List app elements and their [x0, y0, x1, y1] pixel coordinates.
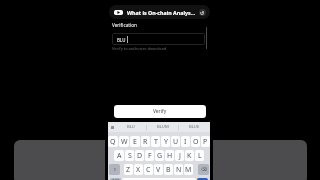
- button[interactable]: R: [141, 136, 150, 147]
- staticText: A: [117, 151, 122, 161]
- staticText: P: [203, 137, 208, 147]
- button[interactable]: BLU: [116, 122, 146, 132]
- staticText: Verify to authorize download: [112, 46, 167, 51]
- staticText: O: [193, 137, 199, 147]
- staticText: 123: [112, 178, 120, 180]
- button[interactable]: V: [154, 164, 163, 175]
- staticText: Y: [164, 137, 168, 147]
- staticText: E: [133, 137, 137, 147]
- staticText: J: [179, 151, 181, 161]
- button[interactable]: Refresh: [199, 9, 206, 16]
- staticText: M: [185, 165, 192, 175]
- button[interactable]: Numbers: [110, 178, 121, 180]
- staticText: What is On-chain Analys...: [127, 9, 196, 16]
- button[interactable]: W: [119, 136, 129, 147]
- staticText: Z: [126, 165, 131, 175]
- staticText: Verification: [112, 22, 137, 28]
- staticText: BLUM: [157, 124, 169, 130]
- staticText: BLU: [127, 124, 135, 130]
- staticText: BLU: [117, 37, 126, 43]
- button[interactable]: Verify: [114, 105, 206, 118]
- button[interactable]: J: [175, 150, 184, 161]
- button[interactable]: G: [155, 150, 164, 161]
- staticText: Verify: [153, 108, 167, 115]
- button[interactable]: K: [185, 150, 194, 161]
- button[interactable]: E: [130, 136, 140, 147]
- button[interactable]: D: [135, 150, 144, 161]
- staticText: T: [154, 137, 158, 147]
- button[interactable]: Backspace: [198, 164, 209, 175]
- staticText: F: [148, 151, 152, 161]
- button[interactable]: BLU: [112, 33, 205, 45]
- button[interactable]: Shift: [109, 164, 120, 175]
- button[interactable]: X: [134, 164, 143, 175]
- staticText: N: [176, 165, 182, 175]
- staticText: G: [157, 151, 163, 161]
- button[interactable]: P: [201, 136, 210, 147]
- button[interactable]: B: [164, 164, 173, 175]
- button[interactable]: Emoji: [108, 122, 116, 132]
- staticText: X: [136, 165, 141, 175]
- staticText: S: [128, 151, 132, 161]
- button[interactable]: S: [125, 150, 134, 161]
- staticText: D: [137, 151, 143, 161]
- staticText: C: [146, 165, 151, 175]
- button[interactable]: C: [144, 164, 153, 175]
- button[interactable]: Go: [197, 178, 208, 180]
- staticText: U: [173, 137, 179, 147]
- button[interactable]: O: [191, 136, 200, 147]
- staticText: K: [187, 151, 192, 161]
- staticText: L: [198, 151, 202, 161]
- staticText: H: [167, 151, 173, 161]
- staticText: V: [156, 165, 161, 175]
- button[interactable]: A: [114, 150, 124, 161]
- staticText: ⌫: [201, 167, 207, 172]
- staticText: ↺: [200, 10, 205, 16]
- button[interactable]: L: [195, 150, 204, 161]
- button[interactable]: F: [145, 150, 154, 161]
- button[interactable]: Q: [108, 136, 118, 147]
- button[interactable]: H: [165, 150, 174, 161]
- button[interactable]: Y: [161, 136, 170, 147]
- button[interactable]: Z: [124, 164, 133, 175]
- staticText: R: [143, 137, 148, 147]
- button[interactable]: M: [184, 164, 193, 175]
- staticText: ⇧: [113, 167, 117, 172]
- button[interactable]: T: [151, 136, 160, 147]
- button[interactable]: BLUE: [179, 122, 210, 132]
- staticText: W: [121, 137, 128, 147]
- button[interactable]: I: [181, 136, 190, 147]
- button[interactable]: N: [174, 164, 183, 175]
- button[interactable]: BLUM: [147, 122, 178, 132]
- staticText: Q: [110, 137, 116, 147]
- staticText: B: [166, 165, 171, 175]
- button[interactable]: What is On-chain Analys...: [109, 5, 210, 19]
- staticText: BLUE: [189, 124, 200, 130]
- staticText: I: [184, 137, 187, 147]
- button[interactable]: U: [171, 136, 180, 147]
